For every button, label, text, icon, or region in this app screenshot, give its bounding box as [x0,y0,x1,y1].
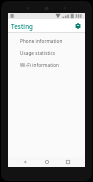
staticText: Phone information [20,38,63,44]
staticText: Testing [11,22,34,30]
staticText: Usage statistics [20,50,56,56]
button[interactable]: Usage statistics [8,47,85,59]
button[interactable]: Recents [63,157,73,167]
button[interactable]: Back [20,157,30,167]
button[interactable]: Wi-Fi information [8,59,85,71]
staticText: Wi-Fi information [20,62,60,68]
button[interactable]: Phone information [8,35,85,47]
button[interactable]: Actions [73,21,82,30]
button[interactable]: Home [42,157,52,167]
